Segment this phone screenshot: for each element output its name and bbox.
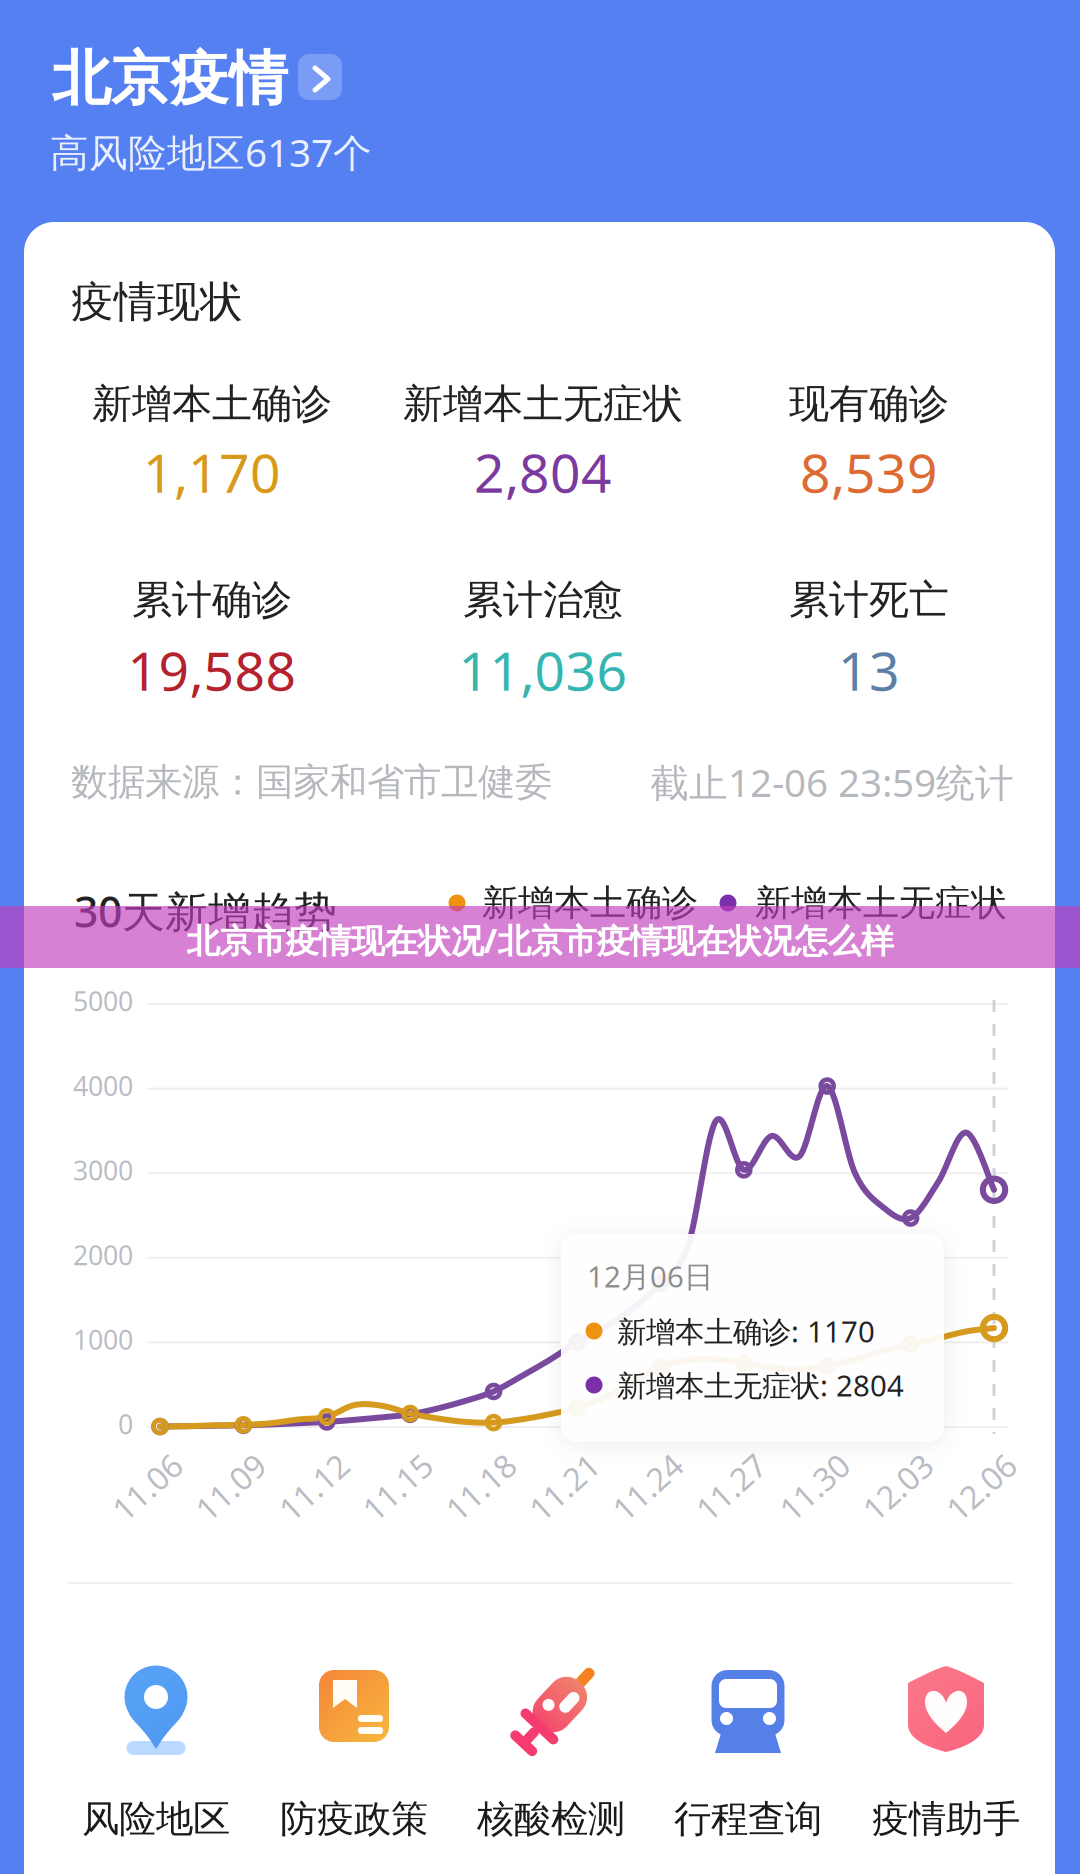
staticText: 新增本土确诊 bbox=[92, 379, 332, 428]
staticText: 11.27 bbox=[690, 1466, 771, 1508]
staticText: 新增本土无症状 bbox=[755, 881, 1007, 925]
staticText: 11.21 bbox=[523, 1466, 604, 1508]
staticText: 疫情现状 bbox=[71, 276, 243, 328]
staticText: 11.30 bbox=[774, 1466, 855, 1508]
staticText: 疫情助手 bbox=[872, 1796, 1020, 1842]
staticText: 累计确诊 bbox=[132, 575, 292, 624]
staticText: 12月06日 bbox=[587, 1256, 713, 1295]
staticText: 4000 bbox=[73, 1068, 133, 1103]
button[interactable]: 风险地区 bbox=[61, 1635, 251, 1865]
staticText: 新增本土确诊: 1170 bbox=[617, 1311, 875, 1350]
staticText: 1,170 bbox=[143, 437, 281, 507]
staticText: 2000 bbox=[73, 1237, 133, 1272]
staticText: 11.12 bbox=[273, 1466, 354, 1508]
staticText: 新增本土无症状 bbox=[403, 379, 683, 428]
staticText: 新增本土确诊 bbox=[482, 881, 698, 925]
staticText: 12.03 bbox=[857, 1466, 938, 1508]
staticText: 累计治愈 bbox=[463, 575, 623, 624]
staticText: 11.18 bbox=[440, 1466, 521, 1508]
staticText: 19,588 bbox=[127, 635, 296, 705]
staticText: 核酸检测 bbox=[477, 1796, 625, 1842]
staticText: 1000 bbox=[73, 1322, 133, 1357]
staticText: 12.06 bbox=[940, 1466, 1021, 1508]
button[interactable]: 防疫政策 bbox=[259, 1635, 449, 1865]
staticText: 8,539 bbox=[800, 437, 938, 507]
button[interactable]: 行程查询 bbox=[653, 1635, 843, 1865]
staticText: 防疫政策 bbox=[280, 1796, 428, 1842]
staticText: 11.09 bbox=[190, 1466, 271, 1508]
staticText: 11.24 bbox=[607, 1466, 688, 1508]
staticText: 风险地区 bbox=[82, 1796, 230, 1842]
staticText: 新增本土无症状: 2804 bbox=[617, 1365, 904, 1404]
staticText: 2,804 bbox=[474, 437, 612, 507]
staticText: 截止12-06 23:59统计 bbox=[650, 756, 1014, 808]
staticText: 现有确诊 bbox=[789, 379, 949, 428]
staticText: 行程查询 bbox=[674, 1796, 822, 1842]
staticText: 13 bbox=[838, 635, 900, 705]
staticText: 北京市疫情现在状况/北京市疫情现在状况怎么样 bbox=[186, 918, 893, 962]
staticText: 5000 bbox=[73, 983, 133, 1019]
staticText: 累计死亡 bbox=[789, 575, 949, 624]
staticText: 高风险地区6137个 bbox=[50, 126, 372, 178]
staticText: 北京疫情 bbox=[52, 43, 288, 115]
staticText: 11,036 bbox=[458, 635, 627, 705]
button[interactable]: 核酸检测 bbox=[456, 1635, 646, 1865]
staticText: 数据来源：国家和省市卫健委 bbox=[71, 759, 552, 805]
staticText: 3000 bbox=[73, 1152, 133, 1188]
staticText: 30天新增趋势 bbox=[74, 883, 337, 939]
staticText: 11.06 bbox=[106, 1466, 187, 1508]
button[interactable]: 疫情助手 bbox=[851, 1635, 1041, 1865]
button[interactable]: 北京疫情 bbox=[52, 40, 346, 114]
staticText: 0 bbox=[118, 1406, 133, 1442]
staticText: 11.15 bbox=[357, 1466, 438, 1508]
